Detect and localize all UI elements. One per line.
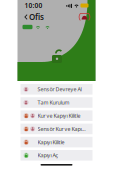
button[interactable]: Alarm — [77, 12, 91, 22]
staticText: Sensör Kur ve Kapıyı Kilitle — [37, 125, 87, 132]
button[interactable]: Ofis — [21, 10, 47, 24]
staticText: 10:00 — [24, 1, 42, 10]
staticText: Ofis — [29, 12, 44, 22]
button[interactable]: Kapıyı Kilitle — [20, 137, 92, 147]
button[interactable]: Kapıyı Aç — [20, 150, 92, 161]
button[interactable]: Sensör Kur ve Kapıyı Kilitle — [20, 124, 92, 134]
button[interactable]: Tam Kurulum — [20, 97, 92, 108]
button[interactable]: Sensör Devreye Al — [20, 84, 92, 95]
staticText: Kapıyı Aç — [37, 152, 58, 159]
staticText: Tam Kurulum — [37, 99, 69, 106]
staticText: Sensör Devreye Al — [37, 86, 81, 93]
staticText: Kur ve Kapıyı Kilitle — [37, 112, 80, 119]
staticText: Kapıyı Kilitle — [37, 139, 64, 146]
button[interactable]: Kur ve Kapıyı Kilitle — [20, 110, 92, 121]
